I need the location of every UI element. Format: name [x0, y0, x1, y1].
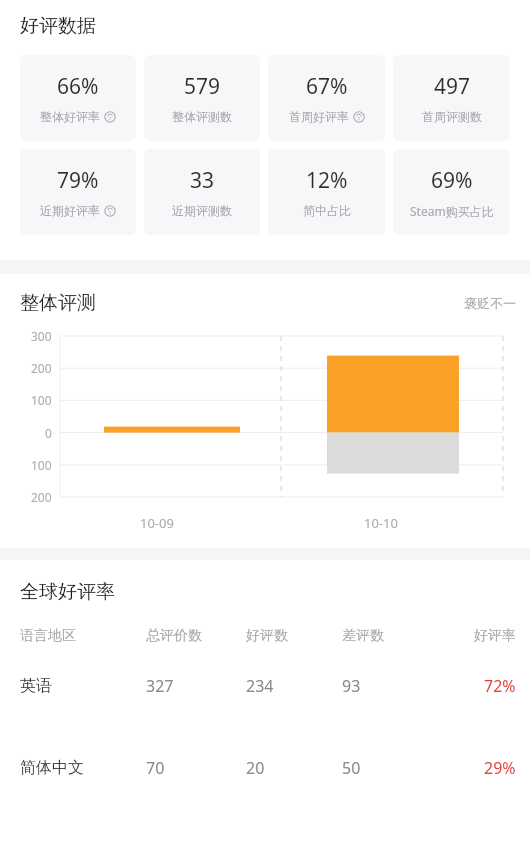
other: Help: [353, 111, 365, 123]
staticText: 好评数: [246, 627, 288, 645]
button[interactable]: 33: [144, 149, 260, 235]
staticText: 100: [31, 457, 52, 473]
staticText: 首周评测数: [422, 109, 482, 124]
button[interactable]: 66%: [20, 55, 136, 141]
staticText: 200: [31, 489, 52, 505]
staticText: 33: [190, 166, 215, 195]
button[interactable]: 79%: [20, 149, 136, 235]
staticText: 234: [246, 675, 274, 697]
staticText: 好评数据: [20, 14, 96, 38]
staticText: 93: [342, 675, 361, 697]
button[interactable]: 579: [144, 55, 260, 141]
staticText: 200: [31, 360, 52, 376]
staticText: 简体中文: [20, 758, 84, 778]
staticText: 79%: [57, 166, 99, 195]
staticText: 简中占比: [303, 203, 351, 218]
button[interactable]: 67%: [268, 55, 385, 141]
staticText: 近期评测数: [172, 203, 232, 218]
button[interactable]: 497: [393, 55, 510, 141]
other: Help: [104, 205, 116, 217]
button[interactable]: 简体中文: [0, 727, 530, 809]
staticText: 72%: [484, 675, 516, 697]
other: Help: [104, 111, 116, 123]
staticText: 好评率: [474, 627, 516, 645]
staticText: 0: [45, 425, 52, 441]
button[interactable]: 69%: [393, 149, 510, 235]
button[interactable]: 英语: [0, 645, 530, 727]
staticText: 整体好评率: [40, 109, 100, 124]
staticText: 66%: [57, 72, 99, 101]
staticText: Steam购买占比: [410, 203, 494, 219]
staticText: 70: [146, 757, 165, 779]
staticText: 英语: [20, 676, 52, 696]
staticText: 差评数: [342, 627, 384, 645]
staticText: 67%: [306, 72, 348, 101]
staticText: 12%: [306, 166, 348, 195]
staticText: 语言地区: [20, 627, 76, 645]
staticText: 褒贬不一: [464, 295, 516, 311]
staticText: 100: [31, 392, 52, 408]
staticText: 69%: [431, 166, 473, 195]
staticText: 29%: [484, 757, 516, 779]
staticText: 10-10: [364, 514, 398, 532]
staticText: 整体评测数: [172, 109, 232, 124]
staticText: 总评价数: [146, 627, 202, 645]
button[interactable]: 12%: [268, 149, 385, 235]
staticText: 整体评测: [20, 291, 96, 315]
staticText: 10-09: [140, 514, 174, 532]
staticText: 327: [146, 675, 174, 697]
staticText: 20: [246, 757, 265, 779]
staticText: 50: [342, 757, 361, 779]
staticText: 全球好评率: [20, 580, 115, 604]
staticText: 首周好评率: [289, 109, 349, 124]
staticText: 近期好评率: [40, 203, 100, 218]
staticText: 497: [434, 72, 471, 101]
staticText: 579: [184, 72, 221, 101]
staticText: 300: [31, 328, 52, 344]
